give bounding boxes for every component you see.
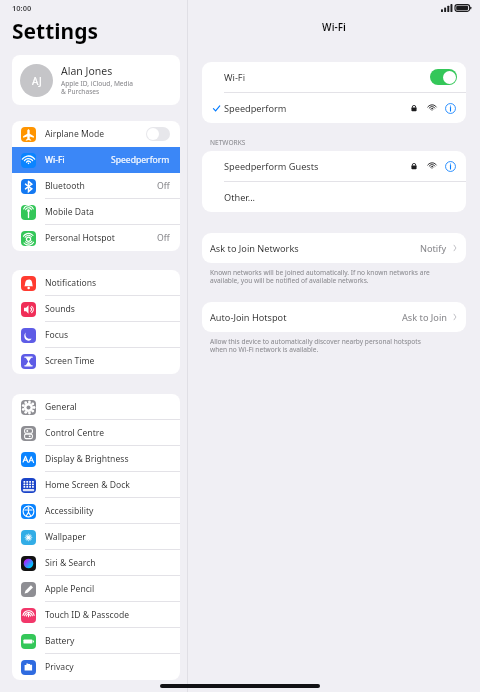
staticText: Airplane Mode bbox=[45, 128, 146, 140]
staticText: Speedperform bbox=[111, 154, 170, 166]
staticText: Allow this device to automatically disco… bbox=[210, 337, 421, 354]
button[interactable]: Airplane Mode toggle bbox=[146, 127, 170, 141]
staticText: Wi-Fi bbox=[224, 71, 430, 84]
staticText: Ask to Join bbox=[402, 311, 447, 324]
button[interactable]: Battery bbox=[12, 628, 180, 654]
staticText: Wi-Fi bbox=[202, 20, 466, 34]
button[interactable]: AJ bbox=[12, 55, 180, 105]
staticText: Focus bbox=[45, 329, 170, 341]
staticText: Bluetooth bbox=[45, 180, 157, 192]
staticText: Apple Pencil bbox=[45, 583, 170, 595]
staticText: Ask to Join Networks bbox=[210, 242, 420, 255]
staticText: Known networks will be joined automatica… bbox=[210, 268, 430, 285]
other: Secure network bbox=[410, 104, 418, 112]
button[interactable]: Focus bbox=[12, 322, 180, 348]
button[interactable]: Wi-Fi toggle, on bbox=[430, 69, 457, 85]
button[interactable]: Bluetooth bbox=[12, 173, 180, 199]
staticText: Mobile Data bbox=[45, 206, 170, 218]
staticText: Accessibility bbox=[45, 505, 170, 517]
button[interactable]: Mobile Data bbox=[12, 199, 180, 225]
button[interactable]: Control Centre bbox=[12, 420, 180, 446]
staticText: Speedperform Guests bbox=[224, 160, 410, 173]
staticText: General bbox=[45, 401, 170, 413]
staticText: AJ bbox=[32, 74, 42, 88]
other: Secure network bbox=[410, 162, 418, 170]
staticText: Display & Brightness bbox=[45, 453, 170, 465]
button[interactable]: Accessibility bbox=[12, 498, 180, 524]
button[interactable]: Privacy bbox=[12, 654, 180, 680]
staticText: Off bbox=[157, 232, 170, 244]
staticText: Sounds bbox=[45, 303, 170, 315]
button[interactable]: Home Screen & Dock bbox=[12, 472, 180, 498]
staticText: Notifications bbox=[45, 277, 170, 289]
staticText: Personal Hotspot bbox=[45, 232, 157, 244]
staticText: NETWORKS bbox=[210, 138, 246, 147]
button[interactable]: Speedperform Guests bbox=[202, 151, 466, 181]
staticText: Other... bbox=[224, 191, 256, 204]
button[interactable]: Wi-Fi bbox=[202, 62, 466, 92]
staticText: Wi-Fi bbox=[45, 154, 111, 166]
staticText: Screen Time bbox=[45, 355, 170, 367]
button[interactable]: Other... bbox=[202, 182, 466, 212]
button[interactable]: Wi-Fi bbox=[12, 147, 180, 173]
button[interactable]: Airplane Mode bbox=[12, 121, 180, 147]
staticText: Siri & Search bbox=[45, 557, 170, 569]
button[interactable]: Touch ID & Passcode bbox=[12, 602, 180, 628]
button[interactable]: Display & Brightness bbox=[12, 446, 180, 472]
staticText: Wallpaper bbox=[45, 531, 170, 543]
button[interactable]: Personal Hotspot bbox=[12, 225, 180, 251]
button[interactable]: Ask to Join Networks bbox=[202, 233, 466, 263]
button[interactable]: Network information bbox=[445, 161, 456, 172]
staticText: Speedperform bbox=[224, 102, 410, 115]
staticText: Control Centre bbox=[45, 427, 170, 439]
staticText: Alan Jones bbox=[61, 64, 113, 78]
staticText: Home Screen & Dock bbox=[45, 479, 170, 491]
staticText: Battery bbox=[45, 635, 170, 647]
button[interactable]: Siri & Search bbox=[12, 550, 180, 576]
button[interactable]: Apple Pencil bbox=[12, 576, 180, 602]
staticText: Notify bbox=[420, 242, 447, 255]
button[interactable]: Wallpaper bbox=[12, 524, 180, 550]
button[interactable]: Notifications bbox=[12, 270, 180, 296]
staticText: Off bbox=[157, 180, 170, 192]
staticText: Auto-Join Hotspot bbox=[210, 311, 402, 324]
button[interactable]: Speedperform bbox=[202, 93, 466, 123]
staticText: Settings bbox=[12, 17, 99, 46]
staticText: Privacy bbox=[45, 661, 170, 673]
button[interactable]: Network information bbox=[445, 103, 456, 114]
staticText: Touch ID & Passcode bbox=[45, 609, 170, 621]
button[interactable]: Sounds bbox=[12, 296, 180, 322]
staticText: Apple ID, iCloud, Media & Purchases bbox=[61, 79, 134, 96]
button[interactable]: Screen Time bbox=[12, 348, 180, 374]
button[interactable]: Auto-Join Hotspot bbox=[202, 302, 466, 332]
button[interactable]: General bbox=[12, 394, 180, 420]
staticText: 10:00 bbox=[12, 3, 32, 13]
